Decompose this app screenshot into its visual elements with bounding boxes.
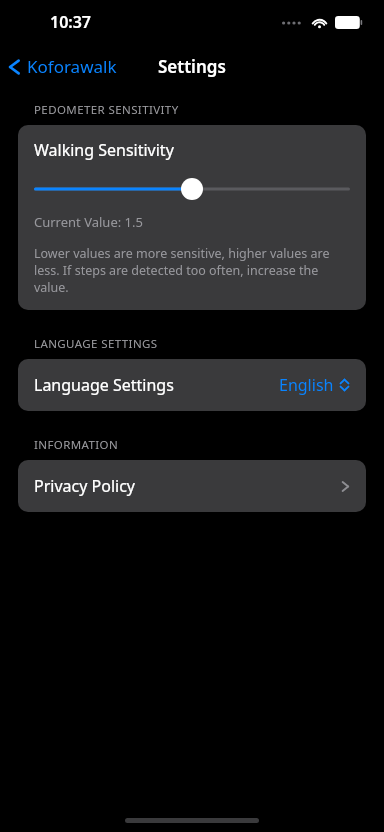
- staticText: PEDOMETER SENSITIVITY: [34, 102, 179, 118]
- staticText: 10:37: [50, 11, 92, 33]
- staticText: Walking Sensitivity: [34, 139, 174, 161]
- staticText: Koforawalk: [27, 55, 117, 78]
- staticText: INFORMATION: [34, 437, 119, 453]
- staticText: Language Settings: [34, 374, 279, 396]
- other: Open Privacy Policy: [341, 479, 350, 494]
- staticText: Lower values are more sensitive, higher …: [34, 245, 350, 296]
- button[interactable]: Koforawalk: [0, 49, 127, 84]
- staticText: LANGUAGE SETTINGS: [34, 336, 158, 352]
- staticText: Privacy Policy: [34, 475, 341, 497]
- button[interactable]: Language Settings: [18, 359, 366, 411]
- button[interactable]: Privacy Policy: [18, 460, 366, 512]
- staticText: Settings: [158, 55, 226, 78]
- staticText: English: [279, 374, 334, 396]
- staticText: Current Value: 1.5: [34, 213, 143, 231]
- button[interactable]: [34, 177, 350, 201]
